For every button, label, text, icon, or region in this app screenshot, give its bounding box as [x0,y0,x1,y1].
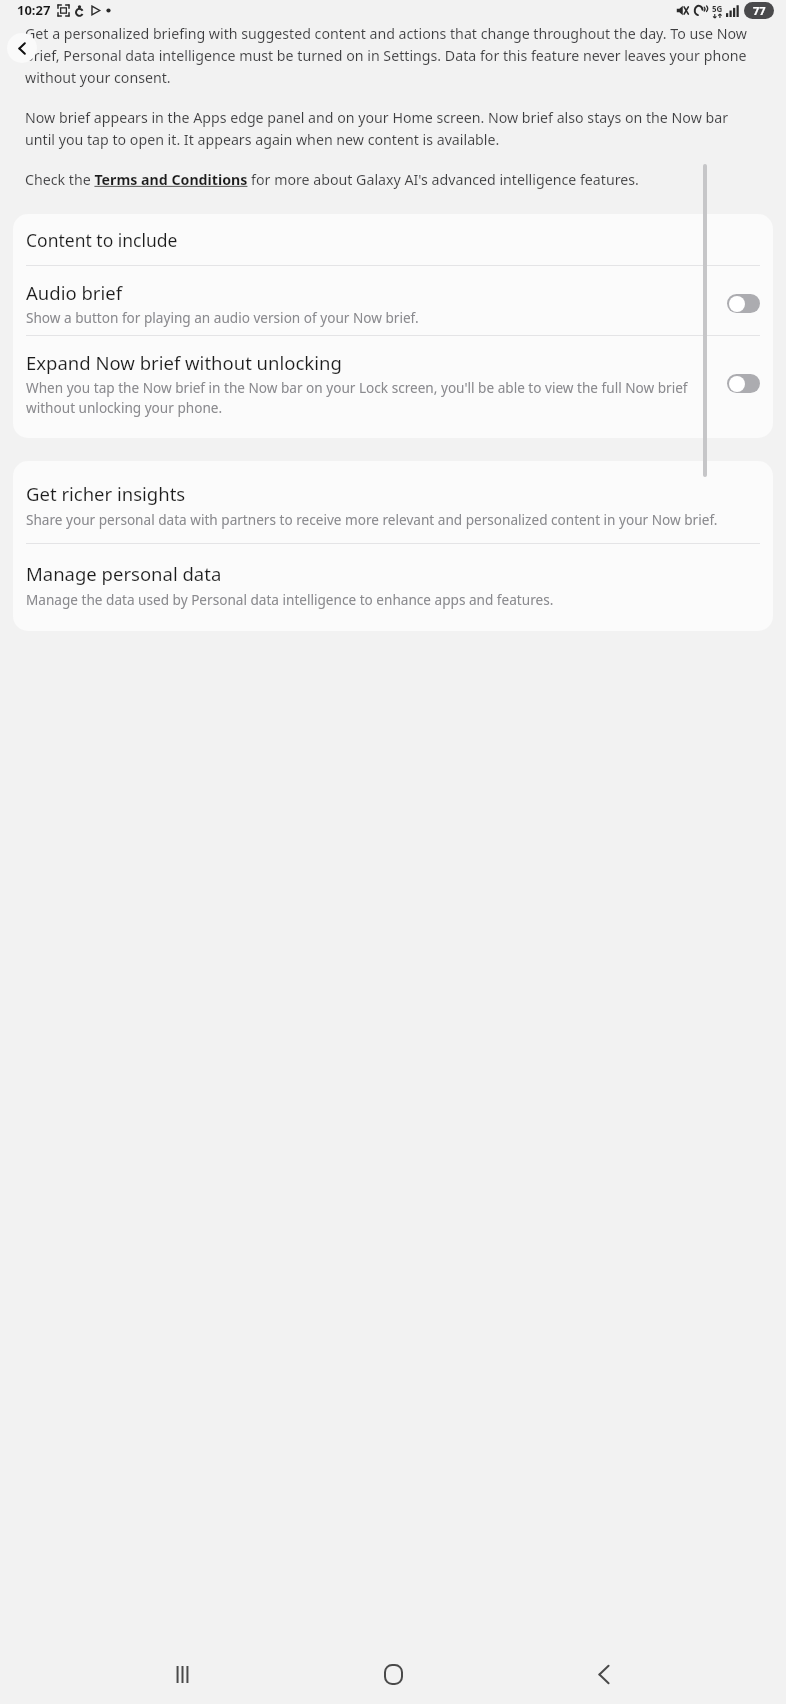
button[interactable]: Toggle [727,374,760,393]
staticText: Manage personal data [26,561,222,586]
staticText: 5G [712,3,723,14]
staticText: Content to include [26,228,178,252]
button[interactable]: Get richer insights [13,461,773,543]
button[interactable]: Toggle [727,294,760,313]
staticText: Get a personalized briefing with suggest… [25,24,761,87]
button[interactable]: Back [7,33,37,63]
staticText: Manage the data used by Personal data in… [26,590,554,609]
staticText: 77 [753,3,766,18]
staticText: Check the Terms and Conditions for more … [25,170,639,189]
button[interactable]: Expand Now brief without unlocking [13,336,773,425]
staticText: Expand Now brief without unlocking [26,350,342,375]
staticText: When you tap the Now brief in the Now ba… [26,378,713,417]
button[interactable]: Back [575,1645,633,1703]
button[interactable]: Recents [153,1645,211,1703]
staticText: Get richer insights [26,481,186,506]
button[interactable]: Manage personal data [13,544,773,631]
staticText: Now brief appears in the Apps edge panel… [25,108,761,149]
staticText: Show a button for playing an audio versi… [26,308,419,327]
staticText: Audio brief [26,280,122,305]
staticText: Share your personal data with partners t… [26,510,718,529]
button[interactable]: Audio brief [13,266,773,335]
staticText: 10:27 [17,1,51,19]
button[interactable]: Home [364,1645,422,1703]
